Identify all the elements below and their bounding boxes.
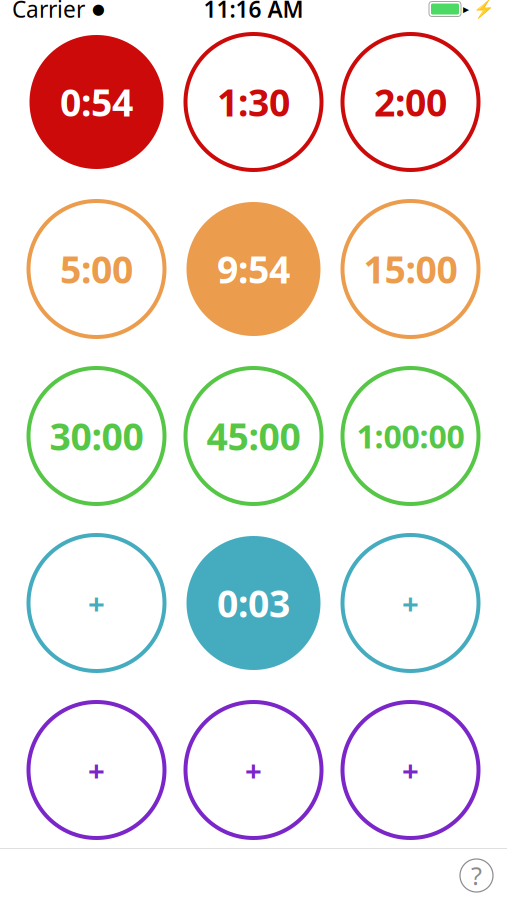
- button[interactable]: 1:00:00: [340, 366, 480, 506]
- button[interactable]: 5:00: [26, 199, 166, 339]
- staticText: +: [402, 750, 419, 789]
- button[interactable]: +: [26, 533, 166, 673]
- staticText: 0:03: [217, 578, 290, 628]
- button[interactable]: 2:00: [340, 32, 480, 172]
- staticText: 45:00: [206, 411, 300, 461]
- staticText: 2:00: [374, 77, 447, 127]
- staticText: 5:00: [60, 244, 133, 294]
- button[interactable]: 15:00: [340, 199, 480, 339]
- staticText: 15:00: [363, 244, 457, 294]
- staticText: ⚡: [473, 0, 495, 19]
- staticText: Carrier: [12, 0, 85, 24]
- staticText: 1:00:00: [356, 415, 464, 457]
- staticText: 1:30: [217, 77, 290, 127]
- button[interactable]: +: [183, 700, 323, 840]
- staticText: +: [88, 750, 105, 789]
- button[interactable]: 30:00: [26, 366, 166, 506]
- staticText: 30:00: [49, 411, 143, 461]
- button[interactable]: 45:00: [183, 366, 323, 506]
- button[interactable]: Help: [460, 859, 493, 892]
- button[interactable]: +: [26, 700, 166, 840]
- staticText: 0:54: [60, 77, 133, 127]
- staticText: 9:54: [217, 244, 290, 294]
- staticText: ●: [92, 1, 105, 17]
- staticText: ▸: [463, 2, 469, 16]
- button[interactable]: 0:03: [183, 533, 323, 673]
- staticText: 11:16 AM: [203, 0, 303, 24]
- staticText: ?: [471, 859, 482, 892]
- button[interactable]: 9:54: [183, 199, 323, 339]
- staticText: +: [88, 583, 105, 622]
- staticText: +: [245, 750, 262, 789]
- button[interactable]: 1:30: [183, 32, 323, 172]
- button[interactable]: +: [340, 533, 480, 673]
- staticText: +: [402, 583, 419, 622]
- button[interactable]: 0:54: [26, 32, 166, 172]
- button[interactable]: +: [340, 700, 480, 840]
